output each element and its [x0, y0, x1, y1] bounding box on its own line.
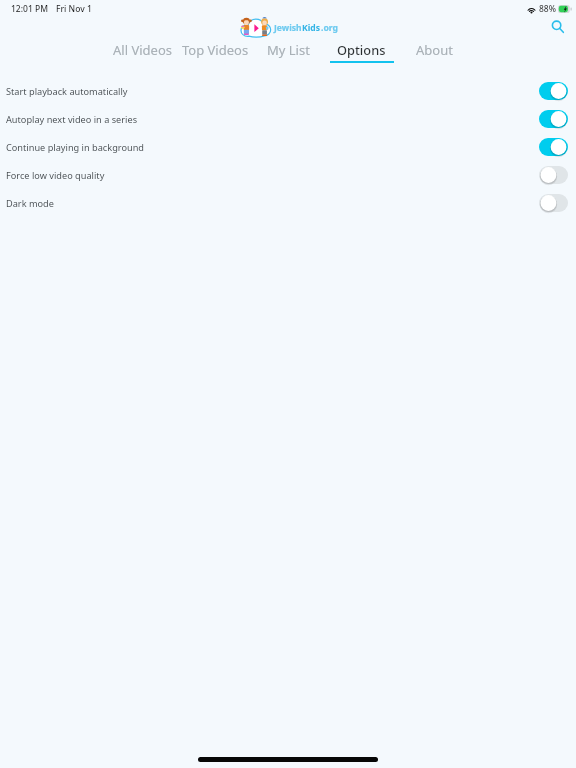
button[interactable]: Toggle on — [539, 138, 568, 156]
staticText: .org — [321, 22, 338, 34]
staticText: Jewish — [274, 22, 302, 34]
staticText: Continue playing in background — [6, 141, 144, 154]
staticText: My List — [267, 41, 310, 59]
staticText: Autoplay next video in a series — [6, 113, 138, 126]
staticText: Start playback automatically — [6, 85, 128, 98]
staticText: Options — [337, 41, 386, 58]
staticText: 88% — [539, 3, 556, 15]
staticText: About — [416, 41, 453, 59]
button[interactable]: All Videos — [106, 41, 179, 64]
staticText: 12:01 PM — [11, 3, 48, 15]
button[interactable]: Force low video quality — [0, 161, 576, 189]
button[interactable]: Search — [546, 15, 570, 39]
button[interactable]: Start playback automatically — [0, 77, 576, 105]
button[interactable]: Toggle on — [539, 82, 568, 100]
button[interactable]: Options — [325, 41, 398, 63]
button[interactable]: Toggle off — [539, 166, 568, 184]
staticText: Force low video quality — [6, 169, 105, 182]
button[interactable]: Continue playing in background — [0, 133, 576, 161]
button[interactable]: About — [398, 41, 471, 64]
staticText: Dark mode — [6, 197, 54, 210]
staticText: All Videos — [113, 41, 172, 59]
button[interactable]: Top Videos — [179, 41, 252, 64]
button[interactable]: Autoplay next video in a series — [0, 105, 576, 133]
button[interactable]: My List — [252, 41, 325, 64]
button[interactable]: Toggle on — [539, 110, 568, 128]
button[interactable]: Toggle off — [539, 194, 568, 212]
staticText: Top Videos — [182, 41, 249, 59]
staticText: Fri Nov 1 — [56, 3, 92, 15]
button[interactable]: Dark mode — [0, 189, 576, 217]
staticText: Kids — [302, 22, 321, 34]
